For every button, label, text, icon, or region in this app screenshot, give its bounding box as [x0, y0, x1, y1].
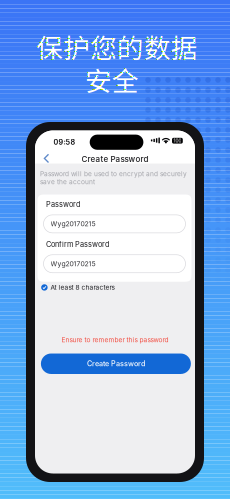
staticText: Password [46, 200, 80, 209]
staticText: 100 [173, 138, 181, 144]
button[interactable]: Wyg20170215 [43, 215, 185, 233]
button[interactable]: Create Password [41, 353, 191, 374]
staticText: Wyg20170215 [50, 220, 95, 228]
staticText: Wyg20170215 [50, 260, 95, 268]
staticText: Password will be used to encrypt and sec… [40, 170, 187, 186]
staticText: 09:58 [53, 138, 75, 146]
button[interactable]: Wyg20170215 [43, 255, 185, 273]
staticText: Confirm Password [46, 240, 109, 249]
button[interactable]: Back [39, 149, 53, 167]
staticText: 安全 [85, 60, 139, 99]
staticText: Ensure to remember this password [61, 336, 168, 344]
staticText: Create Password [81, 154, 148, 164]
staticText: 保护您的数据 [36, 27, 198, 66]
staticText: Create Password [87, 359, 145, 368]
staticText: At least 8 characters [50, 283, 114, 291]
